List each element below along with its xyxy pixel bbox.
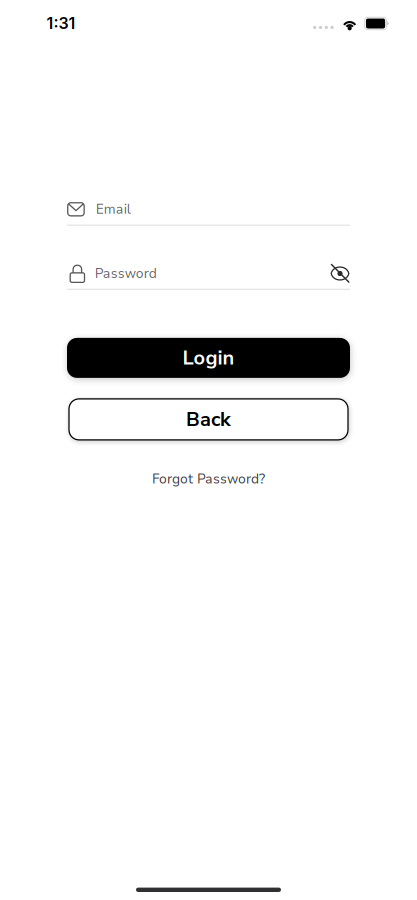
staticText: Back: [186, 406, 231, 433]
button[interactable]: Email: [67, 202, 350, 226]
staticText: Forgot Password?: [152, 470, 265, 488]
button[interactable]: Forgot Password?: [152, 470, 265, 488]
button[interactable]: Login: [67, 338, 350, 378]
staticText: Email: [96, 200, 131, 218]
button[interactable]: Password: [67, 264, 322, 283]
staticText: Password: [95, 264, 157, 283]
button[interactable]: Show password: [330, 263, 350, 284]
button[interactable]: Back: [69, 399, 348, 440]
staticText: 1:31: [46, 14, 75, 33]
staticText: Login: [182, 344, 234, 372]
